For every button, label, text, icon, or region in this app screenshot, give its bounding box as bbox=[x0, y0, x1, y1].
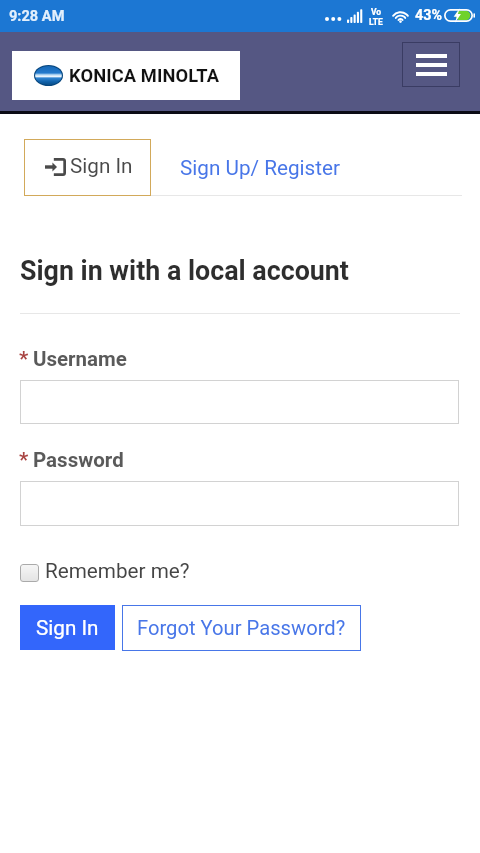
staticText: Forgot Your Password? bbox=[137, 616, 346, 640]
staticText: 43% bbox=[415, 7, 442, 24]
staticText: KONICA MINOLTA bbox=[69, 65, 220, 86]
staticText: Username bbox=[33, 347, 127, 371]
button[interactable]: Sign In bbox=[24, 139, 151, 196]
button[interactable]: Konica Minolta home bbox=[12, 51, 240, 100]
staticText: Remember me? bbox=[45, 559, 190, 583]
staticText: * bbox=[19, 448, 29, 472]
button[interactable]: Sign In bbox=[20, 605, 115, 650]
button[interactable]: Forgot Your Password? bbox=[122, 605, 361, 651]
staticText: Password bbox=[33, 448, 124, 472]
staticText: Vo bbox=[371, 7, 382, 17]
staticText: LTE bbox=[369, 17, 383, 27]
staticText: Sign In bbox=[70, 154, 133, 178]
button[interactable]: Password input bbox=[20, 481, 459, 526]
button[interactable]: Sign Up/ Register bbox=[180, 156, 340, 180]
button[interactable]: Username input bbox=[20, 380, 459, 424]
staticText: 9:28 AM bbox=[9, 7, 65, 24]
button[interactable]: Menu bbox=[402, 42, 460, 87]
staticText: * bbox=[19, 347, 29, 371]
staticText: Sign in with a local account bbox=[20, 255, 349, 286]
button[interactable]: Remember me? bbox=[20, 559, 190, 583]
staticText: Sign In bbox=[36, 616, 99, 640]
